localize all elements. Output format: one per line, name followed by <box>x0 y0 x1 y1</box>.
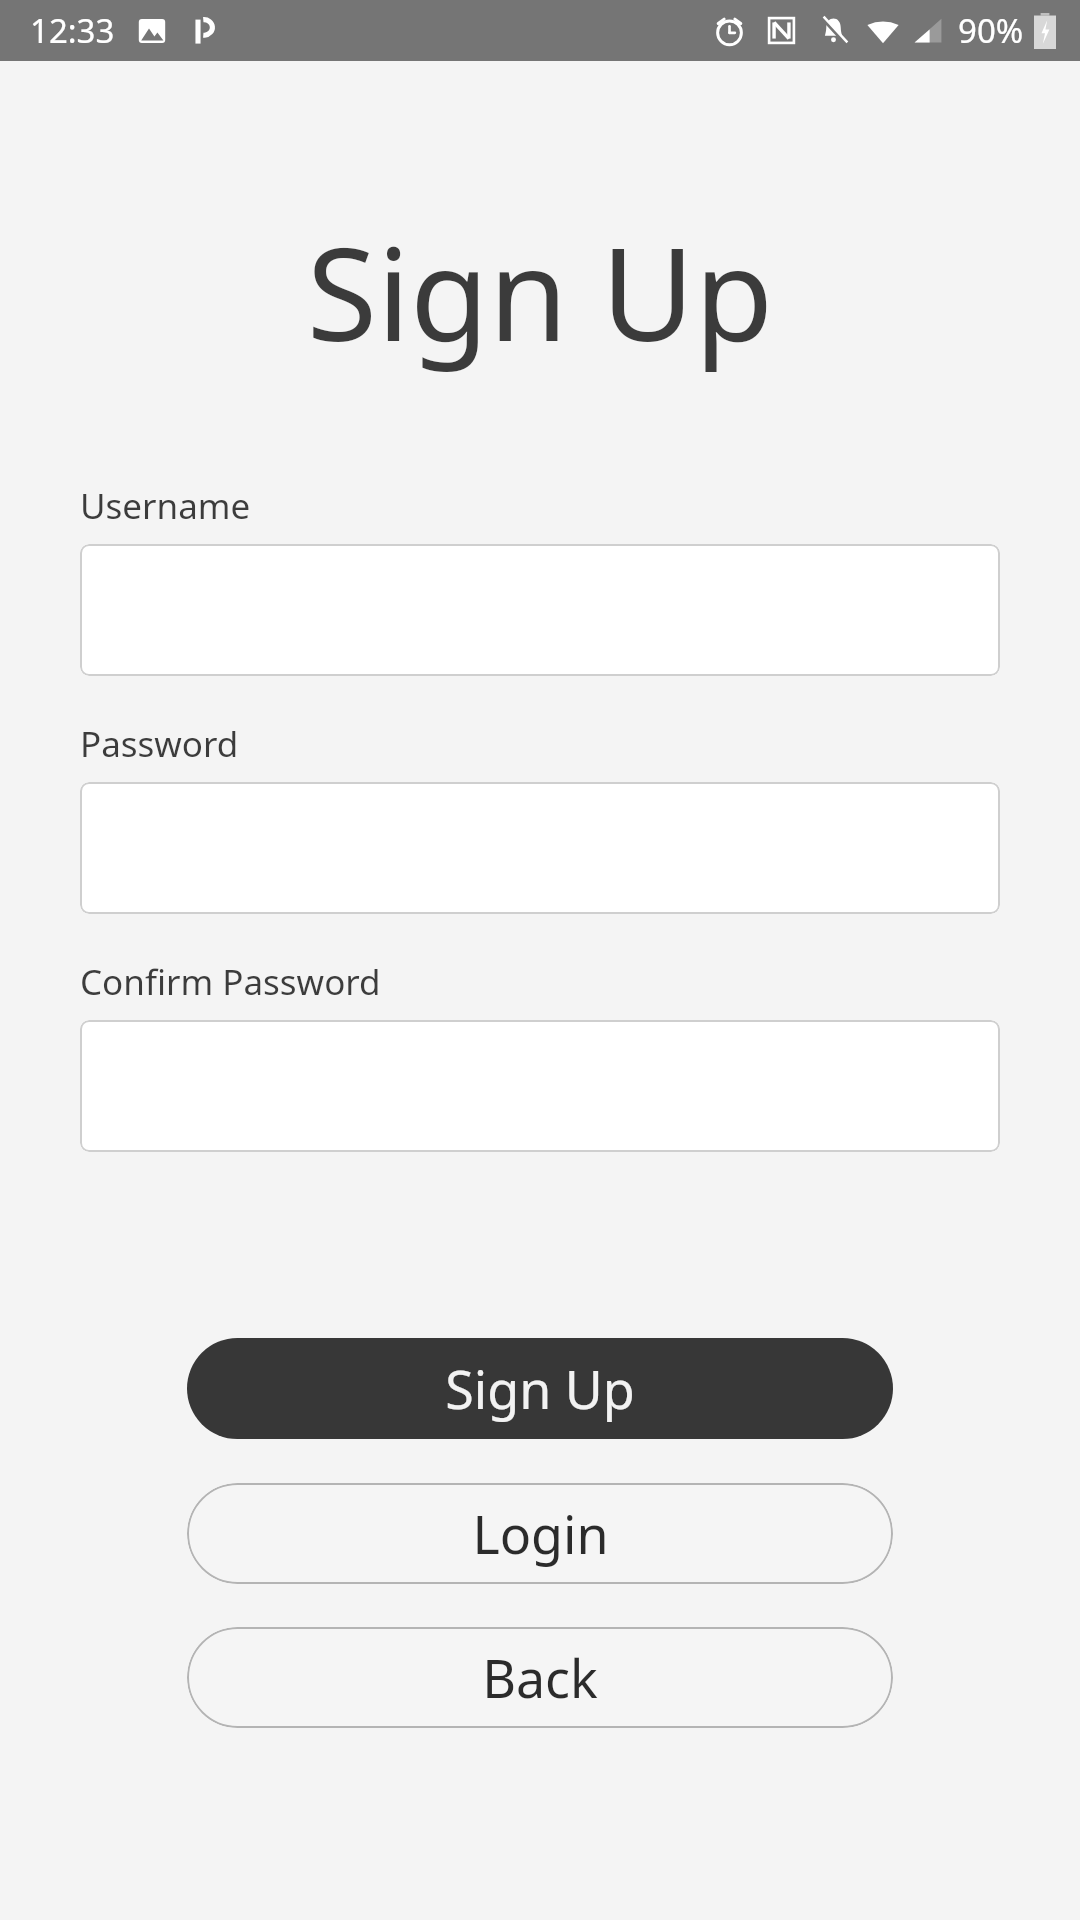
button[interactable] <box>80 544 1000 676</box>
button[interactable] <box>80 1020 1000 1152</box>
button[interactable]: Login <box>187 1483 893 1584</box>
staticText: 12:33 <box>30 8 115 53</box>
button[interactable] <box>80 782 1000 914</box>
button[interactable]: Back <box>187 1627 893 1728</box>
staticText: 90% <box>958 8 1024 53</box>
staticText: Login <box>472 1498 609 1569</box>
staticText: Confirm Password <box>80 958 381 1006</box>
staticText: Password <box>80 720 239 768</box>
staticText: Sign Up <box>0 204 1080 378</box>
button[interactable]: Sign Up <box>187 1338 893 1439</box>
staticText: Back <box>482 1642 598 1713</box>
staticText: Sign Up <box>445 1353 635 1424</box>
staticText: Username <box>80 482 251 530</box>
